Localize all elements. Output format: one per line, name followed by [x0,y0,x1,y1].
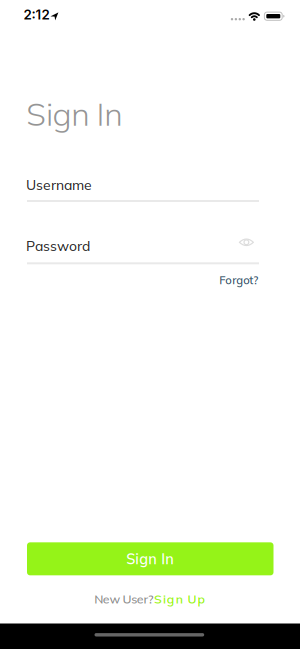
staticText: g [167,591,175,607]
staticText: S [154,591,162,607]
staticText: p [197,591,204,607]
staticText: New User? [94,591,154,607]
button[interactable]: Show password [235,233,257,251]
staticText: Forgot? [219,273,258,287]
staticText: 2:12 [23,6,49,23]
button[interactable]: New User? [94,591,204,607]
staticText: Sign In [26,94,122,134]
staticText: n [176,591,183,607]
staticText: U [187,591,196,607]
button[interactable]: Sign In [27,542,273,575]
staticText: i [163,591,166,607]
staticText: Username [26,176,92,193]
button[interactable]: Forgot? [219,273,258,287]
staticText: Sign In [126,550,174,568]
staticText: Password [26,237,90,254]
